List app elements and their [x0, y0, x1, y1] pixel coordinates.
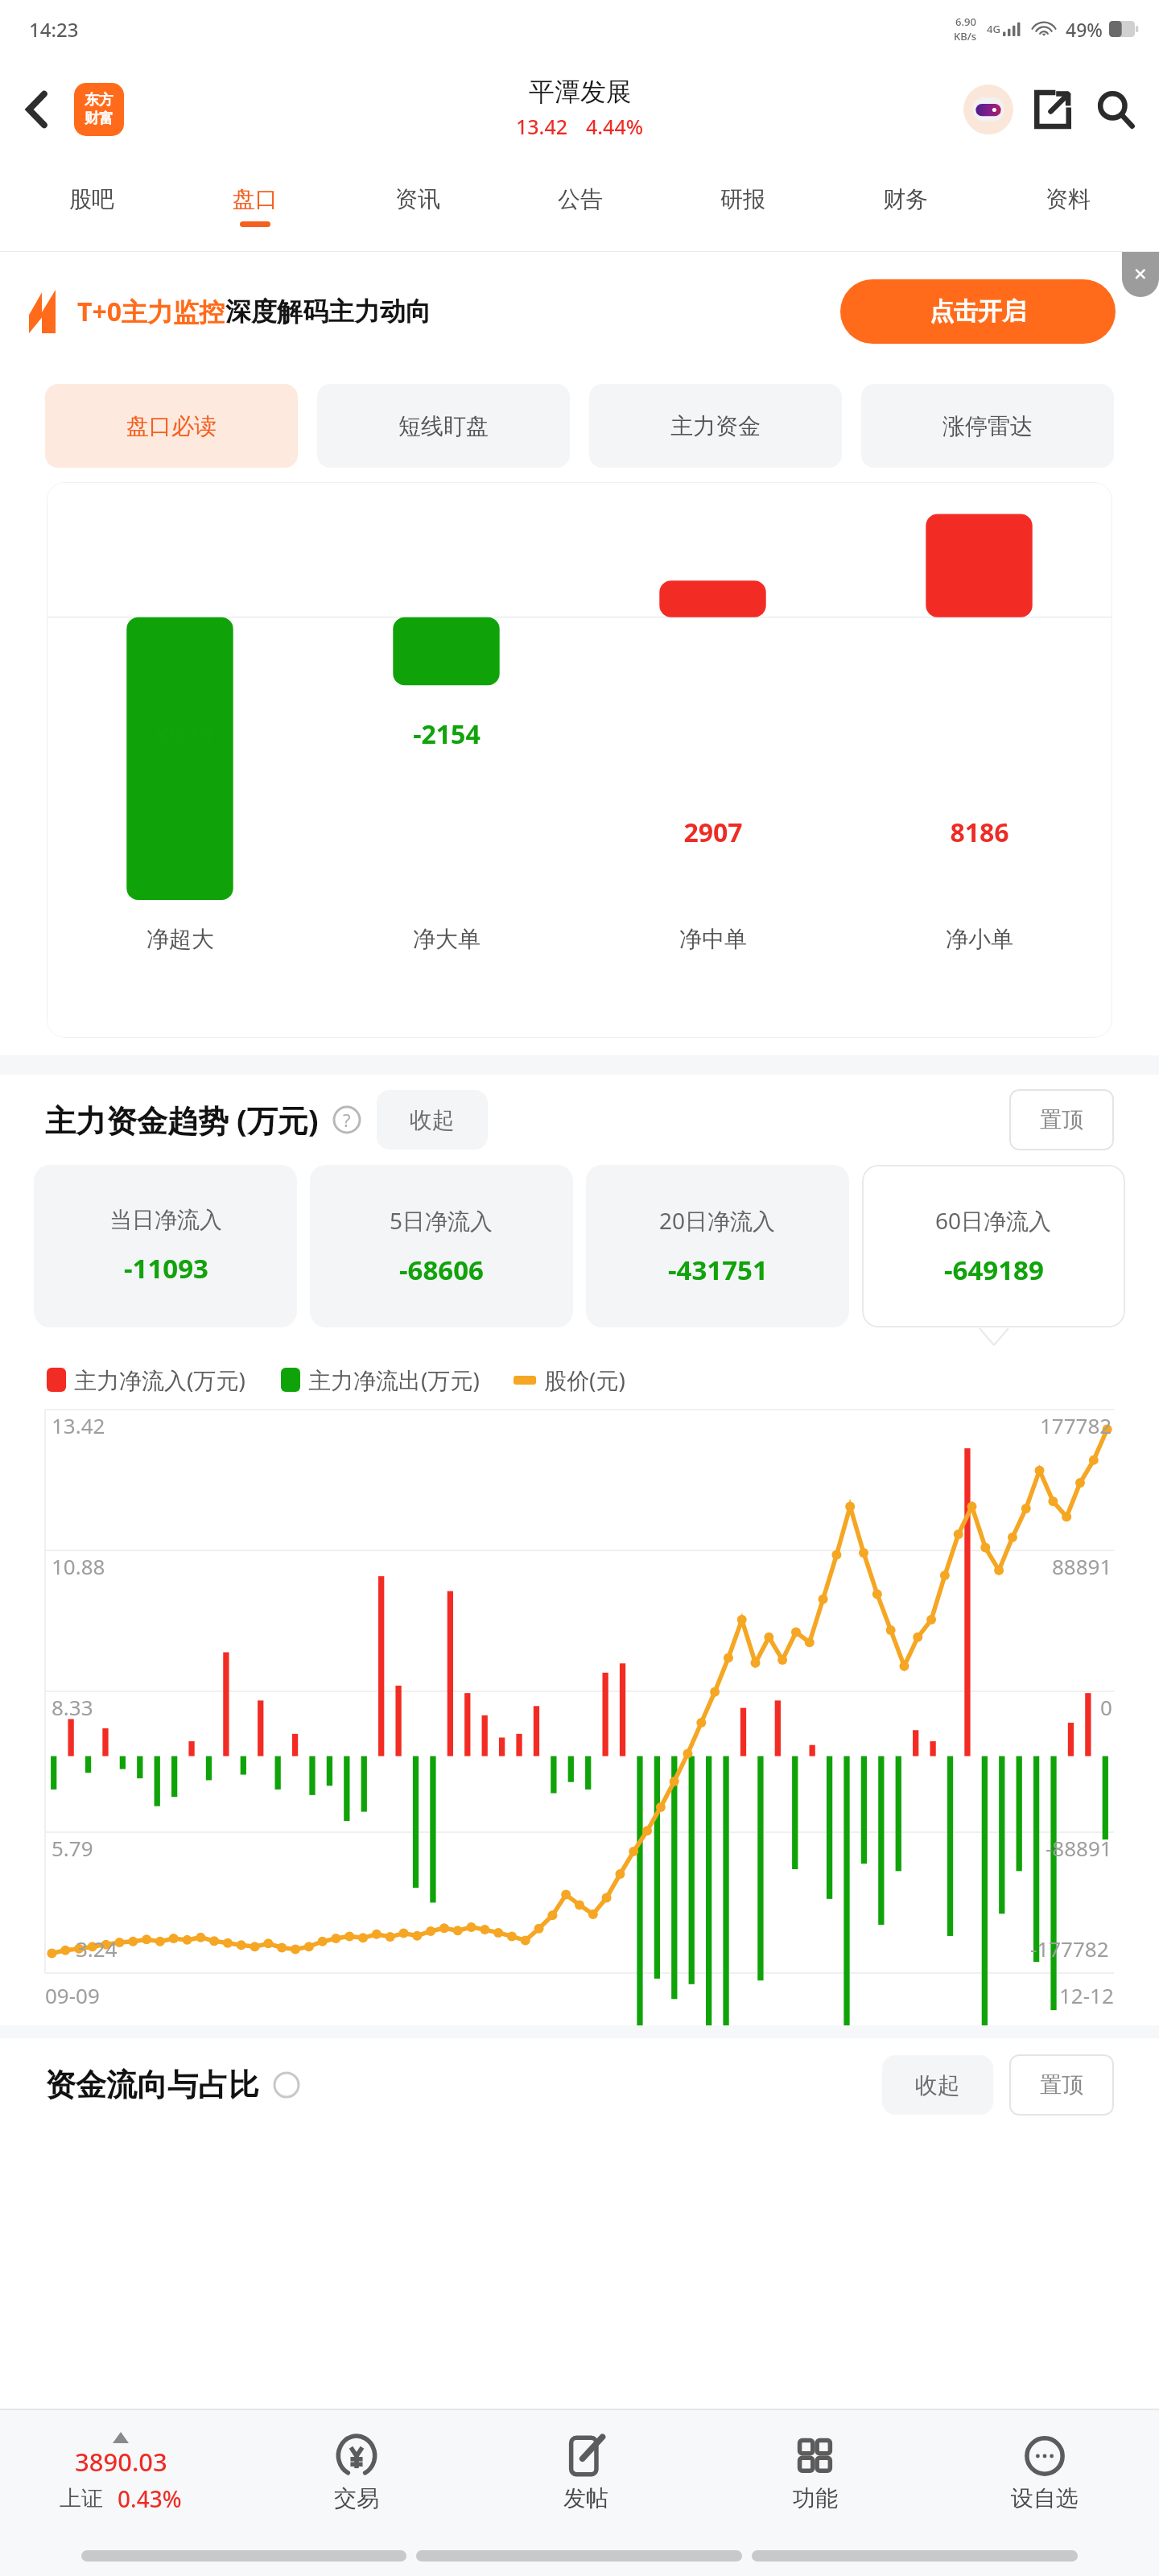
staticText: 09-09 — [45, 1981, 100, 2009]
staticText: ? — [343, 1108, 351, 1132]
staticText: -431751 — [668, 1252, 768, 1288]
button[interactable]: 股吧 — [10, 161, 173, 251]
staticText: KB/s — [954, 29, 977, 43]
button[interactable]: AI assistant — [961, 82, 1016, 137]
button[interactable]: 60日净流入 — [862, 1165, 1125, 1327]
staticText: 股吧 — [69, 185, 114, 213]
staticText: 公告 — [558, 185, 603, 213]
button[interactable]: 5日净流入 — [310, 1165, 573, 1327]
staticText: 13.42 — [516, 113, 568, 140]
button[interactable]: 3890.03 — [0, 2410, 241, 2536]
staticText: 东方 — [85, 91, 113, 109]
staticText: 设自选 — [1011, 2484, 1079, 2512]
staticText: 3.24 — [76, 1934, 118, 1963]
staticText: 点击开启 — [930, 296, 1026, 327]
staticText: 深度解码主力动向 — [225, 295, 431, 328]
staticText: 177782 — [1040, 1411, 1112, 1439]
button[interactable]: 收起 — [377, 1090, 488, 1150]
staticText: 4.44% — [586, 113, 644, 140]
staticText: 主力资金趋势 (万元) — [45, 1099, 319, 1141]
staticText: 12-12 — [1059, 1981, 1114, 2009]
button[interactable]: East Money home — [74, 83, 124, 136]
staticText: -177782 — [1030, 1934, 1109, 1963]
button[interactable]: Share — [1025, 82, 1080, 137]
staticText: 涨停雷达 — [942, 412, 1033, 440]
button[interactable]: 资讯 — [336, 161, 499, 251]
button[interactable]: 功能 — [700, 2410, 930, 2536]
staticText: 置顶 — [1040, 1106, 1083, 1133]
staticText: 8186 — [950, 815, 1009, 850]
staticText: 交易 — [334, 2484, 379, 2512]
button[interactable]: 财务 — [824, 161, 987, 251]
staticText: 60日净流入 — [935, 1205, 1052, 1236]
staticText: -2154 — [413, 716, 481, 752]
staticText: 短线盯盘 — [398, 412, 489, 440]
button[interactable]: 置顶 — [1009, 1089, 1114, 1150]
staticText: 当日净流入 — [109, 1206, 222, 1234]
staticText: 0 — [1100, 1693, 1112, 1721]
staticText: 主力净流入(万元) — [74, 1364, 245, 1395]
staticText: 平潭发展 — [529, 76, 632, 108]
staticText: 4G — [987, 22, 1000, 36]
staticText: 净大单 — [413, 925, 481, 953]
staticText: T+0主力监控 — [77, 294, 225, 329]
button[interactable]: 设自选 — [930, 2410, 1159, 2536]
staticText: 股价(元) — [544, 1364, 625, 1395]
staticText: 发帖 — [563, 2484, 608, 2512]
staticText: 10.88 — [52, 1552, 105, 1580]
staticText: 资料 — [1046, 185, 1091, 213]
staticText: 净中单 — [679, 925, 747, 953]
staticText: 功能 — [793, 2484, 838, 2512]
staticText: 研报 — [720, 185, 765, 213]
staticText: 14:23 — [29, 16, 79, 43]
staticText: 13.42 — [52, 1411, 105, 1439]
button[interactable]: 公告 — [499, 161, 662, 251]
button[interactable]: 资料 — [987, 161, 1149, 251]
button[interactable]: 20日净流入 — [586, 1165, 849, 1327]
staticText: 主力资金 — [670, 412, 761, 440]
staticText: 88891 — [1052, 1552, 1112, 1580]
staticText: 收起 — [915, 2071, 960, 2099]
button[interactable]: Back — [8, 80, 66, 138]
staticText: 盘口必读 — [126, 412, 217, 440]
staticText: 盘口 — [233, 185, 278, 213]
staticText: 8.33 — [52, 1693, 93, 1721]
staticText: -68606 — [399, 1252, 484, 1288]
button[interactable]: 研报 — [662, 161, 824, 251]
staticText: 资讯 — [395, 185, 440, 213]
staticText: ✕ — [1133, 265, 1148, 284]
staticText: 财富 — [85, 109, 113, 128]
staticText: 净小单 — [946, 925, 1013, 953]
staticText: -88891 — [1046, 1834, 1112, 1862]
button[interactable]: 盘口 — [173, 161, 336, 251]
button[interactable]: T+0主力监控 — [29, 263, 1116, 360]
button[interactable]: 置顶 — [1009, 2054, 1114, 2116]
staticText: 收起 — [410, 1106, 455, 1134]
button[interactable]: 点击开启 — [840, 279, 1116, 344]
button[interactable]: 涨停雷达 — [861, 384, 1114, 468]
button[interactable]: 主力资金 — [589, 384, 842, 468]
staticText: 5日净流入 — [390, 1205, 493, 1236]
staticText: 置顶 — [1040, 2071, 1083, 2099]
staticText: 20日净流入 — [659, 1205, 776, 1236]
staticText: 主力净流出(万元) — [308, 1364, 480, 1395]
staticText: 2907 — [683, 815, 743, 850]
button[interactable]: Close banner — [1122, 252, 1159, 297]
button[interactable]: 发帖 — [471, 2410, 700, 2536]
staticText: 上证 — [60, 2485, 103, 2512]
staticText: 3890.03 — [75, 2445, 167, 2479]
staticText: 5.79 — [52, 1834, 93, 1862]
button[interactable]: Help — [328, 1101, 365, 1138]
button[interactable]: 当日净流入 — [34, 1165, 297, 1327]
button[interactable]: Search — [1088, 82, 1143, 137]
staticText: -11093 — [124, 1250, 208, 1286]
button[interactable]: 收起 — [882, 2055, 993, 2115]
button[interactable]: 交易 — [241, 2410, 471, 2536]
staticText: 49% — [1066, 17, 1103, 42]
staticText: 资金流向与占比 — [45, 2066, 259, 2104]
button[interactable]: 盘口必读 — [45, 384, 298, 468]
button[interactable]: 短线盯盘 — [317, 384, 570, 468]
staticText: 净超大 — [146, 925, 214, 953]
staticText: 财务 — [883, 185, 928, 213]
